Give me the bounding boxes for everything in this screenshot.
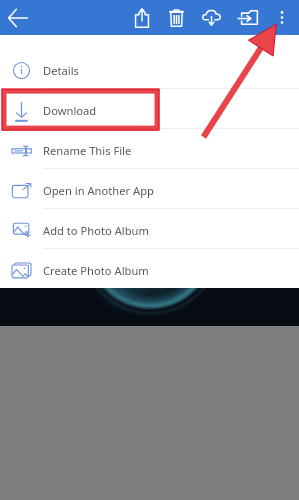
button[interactable]: Save to cloud bbox=[194, 0, 228, 35]
button[interactable]: Details bbox=[0, 48, 299, 88]
button[interactable]: Add to Photo Album bbox=[0, 209, 299, 248]
button[interactable]: Open in Another App bbox=[0, 169, 299, 208]
staticText: Details bbox=[43, 63, 79, 78]
staticText: Add to Photo Album bbox=[43, 223, 149, 238]
button[interactable]: Share bbox=[126, 0, 157, 35]
button[interactable]: Move to folder bbox=[230, 0, 264, 35]
button[interactable]: Rename This File bbox=[0, 129, 299, 168]
staticText: Download bbox=[43, 103, 97, 118]
button[interactable]: Download bbox=[0, 89, 299, 128]
button[interactable]: More options bbox=[266, 0, 297, 35]
staticText: Rename This File bbox=[43, 143, 132, 158]
button[interactable]: Create Photo Album bbox=[0, 249, 299, 288]
staticText: Create Photo Album bbox=[43, 263, 149, 278]
button[interactable]: Delete bbox=[160, 0, 192, 35]
button[interactable]: Back bbox=[0, 0, 36, 35]
staticText: Open in Another App bbox=[43, 183, 154, 198]
